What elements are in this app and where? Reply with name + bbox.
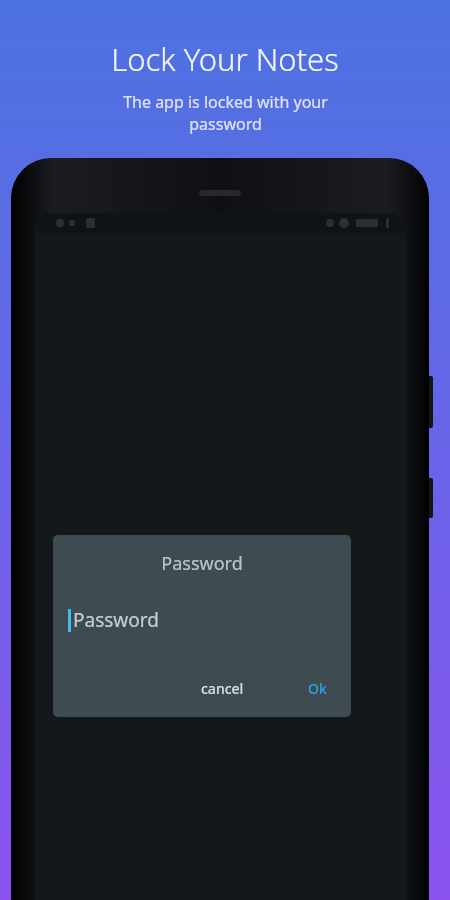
staticText: Ok (308, 679, 327, 698)
staticText: Lock Your Notes (111, 38, 339, 80)
staticText: cancel (201, 679, 244, 698)
staticText: Password (53, 551, 351, 576)
button[interactable]: cancel (191, 672, 254, 705)
staticText: The app is locked with your password (123, 91, 328, 135)
staticText: Password (73, 607, 159, 633)
button[interactable]: Ok (298, 672, 337, 705)
button[interactable]: Password (68, 607, 351, 633)
